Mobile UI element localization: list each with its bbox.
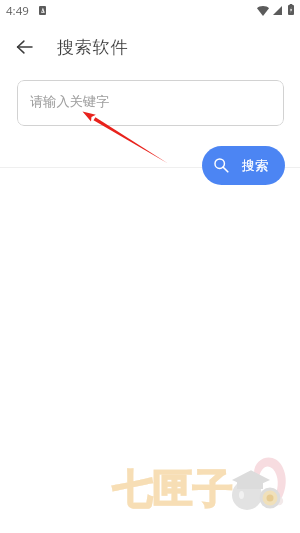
staticText: 搜索软件 — [57, 37, 129, 58]
button[interactable]: 请输入关键字 — [17, 80, 284, 126]
button[interactable]: Back — [9, 35, 39, 59]
staticText: 七匣子 — [112, 464, 232, 514]
button[interactable]: 搜索 — [202, 146, 285, 185]
staticText: 请输入关键字 — [30, 93, 110, 110]
staticText: 4:49 — [6, 3, 29, 19]
staticText: 搜索 — [242, 157, 268, 173]
